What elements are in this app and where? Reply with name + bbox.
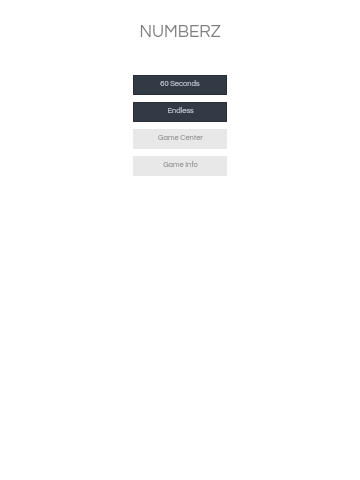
button[interactable]: 60 Seconds xyxy=(133,75,227,95)
button[interactable]: Game Info xyxy=(133,156,227,176)
button[interactable]: Endless xyxy=(133,102,227,122)
staticText: NUMBERZ xyxy=(139,23,221,41)
staticText: Game Center xyxy=(158,134,203,142)
staticText: 60 Seconds xyxy=(160,80,200,88)
staticText: Game Info xyxy=(163,161,198,169)
staticText: Endless xyxy=(167,107,194,115)
button[interactable]: Game Center xyxy=(133,129,227,149)
